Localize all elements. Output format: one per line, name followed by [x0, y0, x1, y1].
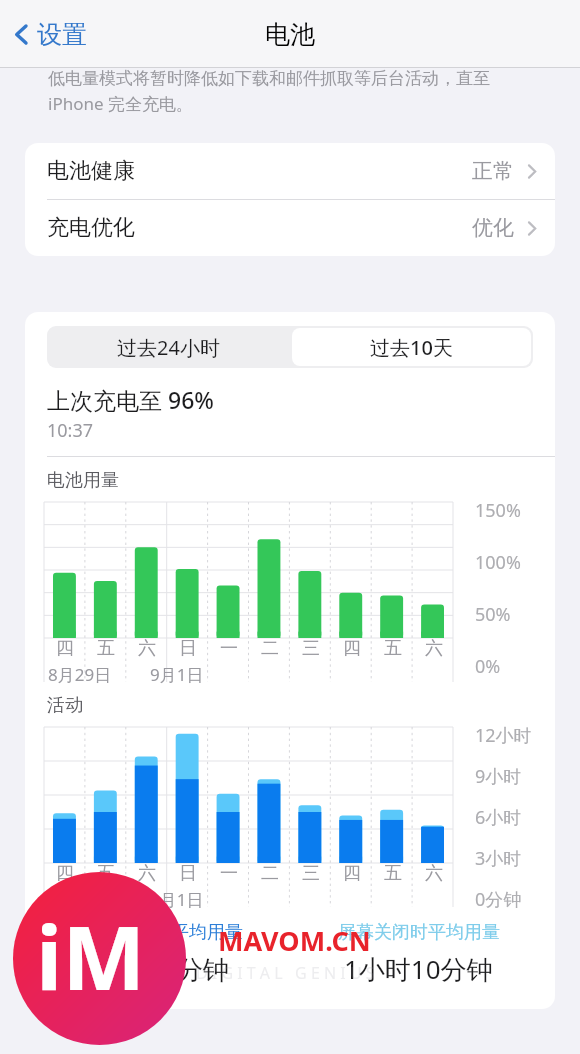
- staticText: MAVOM.CN: [218, 922, 371, 959]
- staticText: 0分钟: [475, 887, 522, 911]
- staticText: 100%: [475, 550, 521, 575]
- staticText: 电池: [265, 19, 315, 50]
- staticText: 五: [97, 637, 115, 660]
- staticText: 过去24小时: [117, 334, 220, 361]
- staticText: 三: [302, 862, 320, 885]
- staticText: 150%: [475, 498, 521, 523]
- staticText: 正常: [472, 158, 514, 184]
- staticText: 五: [384, 637, 402, 660]
- staticText: 优化: [472, 215, 514, 241]
- staticText: 一: [220, 862, 238, 885]
- staticText: 8月29日: [48, 663, 112, 686]
- staticText: 电池健康: [47, 157, 135, 185]
- button[interactable]: 过去24小时: [47, 326, 290, 368]
- staticText: 9小时: [475, 764, 522, 789]
- staticText: 活动: [47, 694, 83, 717]
- staticText: 3小时6分钟: [95, 951, 229, 987]
- staticText: 1小时10分钟: [344, 951, 493, 987]
- staticText: 屏幕开启时平均用量: [81, 921, 243, 944]
- button[interactable]: 充电优化: [25, 200, 555, 256]
- staticText: 五: [384, 862, 402, 885]
- staticText: 六: [138, 862, 156, 885]
- staticText: iM: [36, 896, 146, 1016]
- staticText: 10:37: [47, 418, 94, 443]
- staticText: 六: [425, 637, 443, 660]
- staticText: D I G I T A L G E N I U S: [196, 962, 375, 984]
- button[interactable]: 过去10天: [292, 328, 531, 366]
- staticText: 六: [425, 862, 443, 885]
- staticText: 9月1日: [150, 888, 204, 911]
- staticText: 电池用量: [47, 469, 119, 492]
- staticText: 0%: [475, 654, 501, 679]
- staticText: 12小时: [475, 723, 532, 748]
- staticText: 50%: [475, 602, 511, 627]
- staticText: iPhone 完全充电。: [48, 92, 193, 115]
- staticText: 日: [179, 862, 197, 885]
- staticText: 8月29日: [48, 888, 112, 911]
- staticText: 屏幕关闭时平均用量: [338, 921, 500, 944]
- staticText: 上次充电至 96%: [47, 384, 214, 415]
- staticText: 充电优化: [47, 214, 135, 242]
- staticText: 二: [261, 862, 279, 885]
- staticText: 四: [56, 862, 74, 885]
- staticText: 四: [343, 637, 361, 660]
- staticText: 9月1日: [150, 663, 204, 686]
- staticText: 四: [343, 862, 361, 885]
- staticText: 设置: [37, 19, 87, 50]
- staticText: 六: [138, 637, 156, 660]
- staticText: 三: [302, 637, 320, 660]
- button[interactable]: 电池健康: [25, 143, 555, 200]
- staticText: 3小时: [475, 846, 522, 871]
- staticText: 五: [97, 862, 115, 885]
- button[interactable]: Back to 设置: [8, 11, 93, 58]
- staticText: 6小时: [475, 805, 522, 830]
- staticText: 低电量模式将暂时降低如下载和邮件抓取等后台活动，直至: [48, 68, 490, 89]
- staticText: 四: [56, 637, 74, 660]
- staticText: 二: [261, 637, 279, 660]
- staticText: 一: [220, 637, 238, 660]
- staticText: 日: [179, 637, 197, 660]
- staticText: 过去10天: [370, 334, 453, 361]
